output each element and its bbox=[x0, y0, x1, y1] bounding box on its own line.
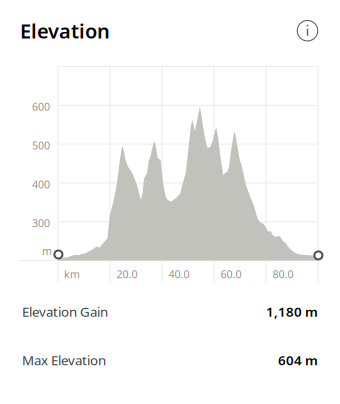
staticText: Max Elevation bbox=[22, 351, 106, 369]
button[interactable]: Max Elevation bbox=[0, 349, 340, 371]
staticText: km bbox=[64, 267, 80, 281]
staticText: 300 bbox=[32, 216, 50, 230]
staticText: 80.0 bbox=[272, 267, 293, 281]
staticText: 500 bbox=[32, 138, 50, 153]
staticText: 600 bbox=[32, 100, 50, 114]
staticText: 60.0 bbox=[220, 267, 241, 281]
staticText: 604 m bbox=[278, 351, 318, 369]
staticText: 400 bbox=[32, 177, 50, 191]
staticText: 20.0 bbox=[116, 267, 137, 281]
staticText: 1,180 m bbox=[266, 303, 318, 320]
staticText: 40.0 bbox=[168, 267, 189, 281]
button[interactable]: Info bbox=[290, 14, 324, 48]
staticText: m bbox=[42, 244, 52, 258]
staticText: Elevation Gain bbox=[22, 303, 108, 320]
button[interactable]: Elevation Gain bbox=[0, 300, 340, 322]
staticText: Elevation bbox=[20, 17, 110, 44]
